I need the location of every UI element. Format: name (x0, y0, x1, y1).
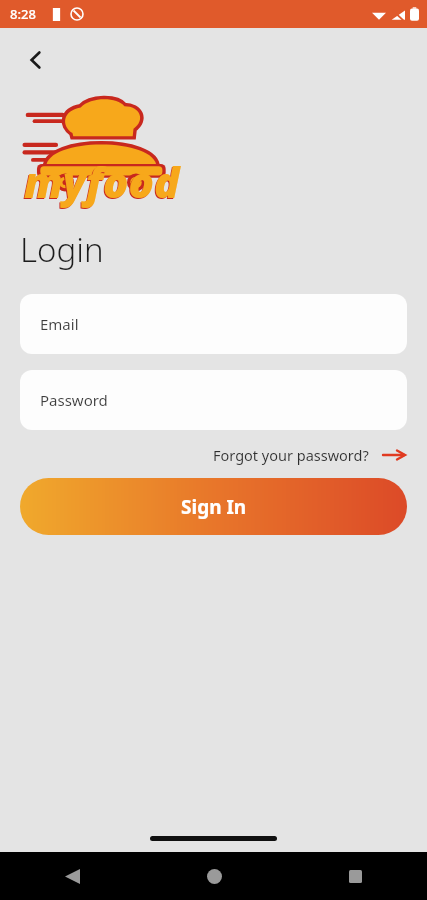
staticText: Sign In (181, 494, 247, 520)
button[interactable]: Password (20, 370, 407, 430)
button[interactable]: Recent apps (335, 856, 375, 896)
button[interactable]: Home (194, 856, 234, 896)
button[interactable]: Back (52, 856, 92, 896)
staticText: myfood (24, 153, 180, 210)
button[interactable]: Sign In (20, 478, 407, 535)
staticText: Password (40, 390, 108, 410)
staticText: myfood (23, 154, 179, 211)
staticText: 8:28 (10, 5, 36, 23)
button[interactable]: Email (20, 294, 407, 354)
staticText: Forgot your password? (213, 445, 369, 465)
button[interactable]: Back (12, 36, 60, 84)
button[interactable]: Forgot your password? (207, 438, 411, 472)
staticText: Login (20, 227, 104, 272)
staticText: Email (40, 314, 79, 334)
